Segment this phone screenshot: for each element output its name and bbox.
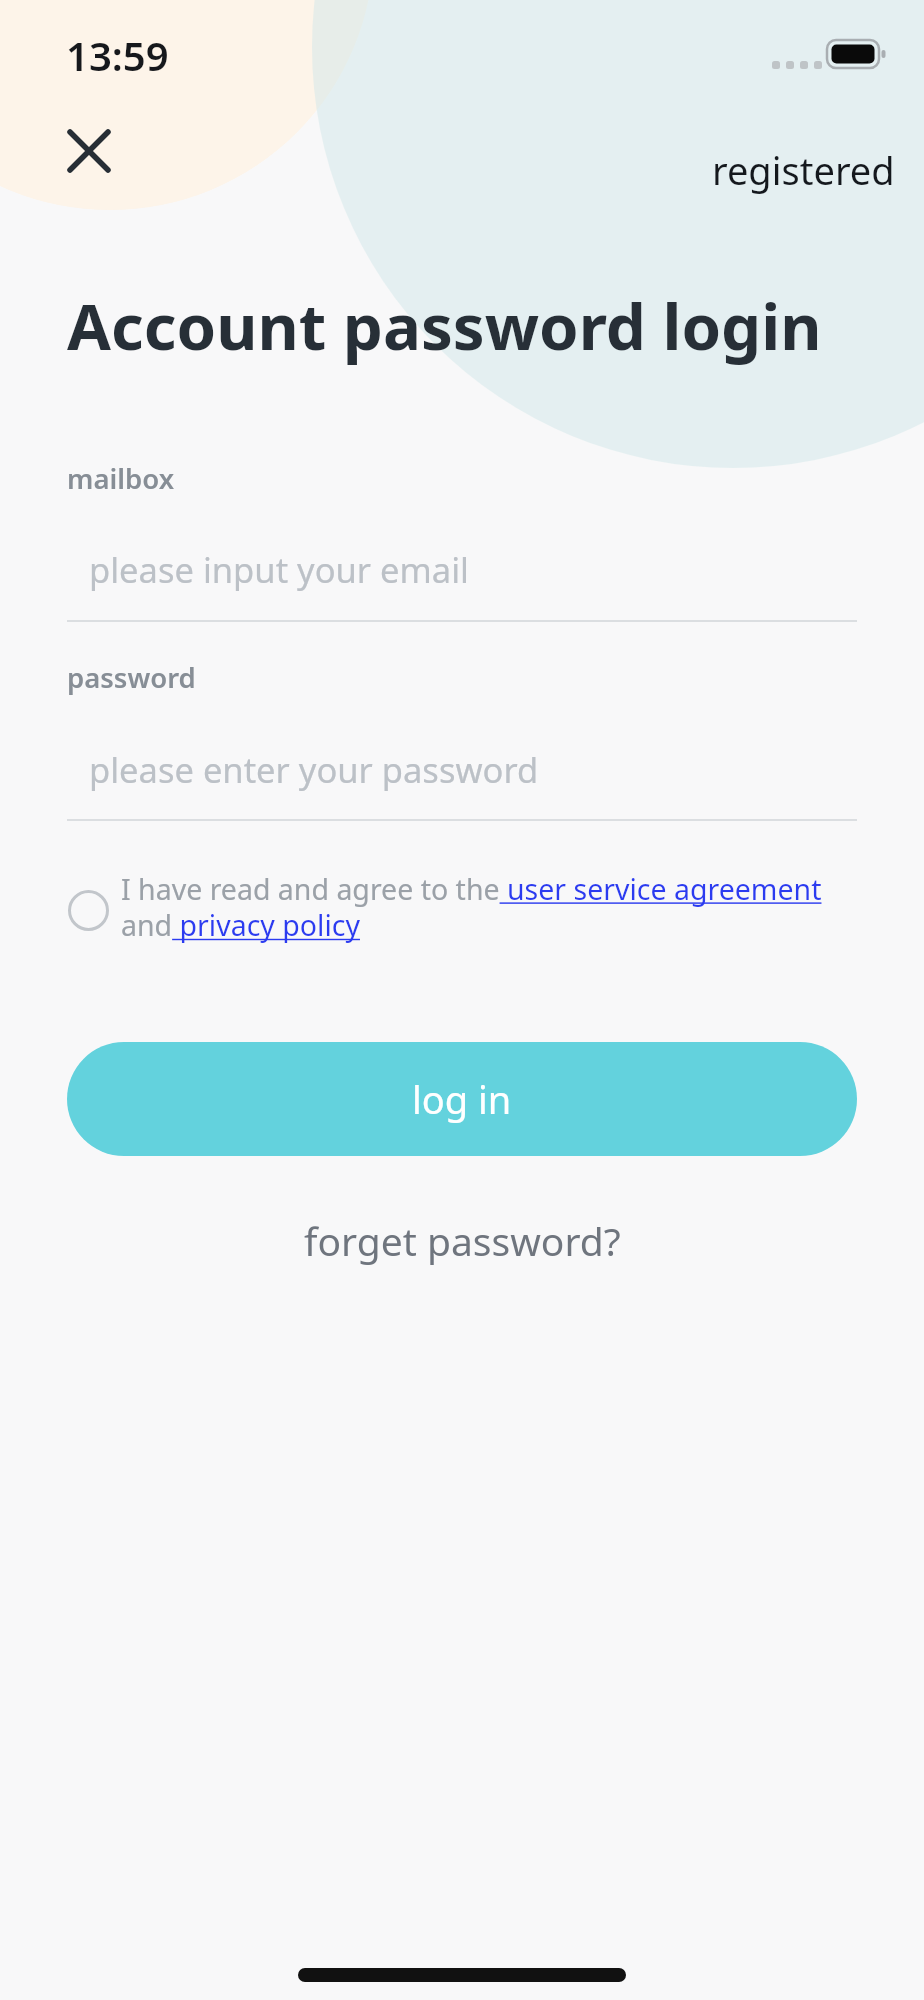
button[interactable]: log in (67, 1042, 857, 1156)
staticText: forget password? (304, 1214, 621, 1267)
staticText: please enter your password (89, 746, 539, 793)
button[interactable] (58, 120, 120, 182)
staticText: I have read and agree to the user servic… (121, 870, 822, 945)
staticText: mailbox (67, 460, 175, 497)
button[interactable]: I have read and agree to the user servic… (121, 870, 822, 945)
staticText: password (67, 659, 196, 696)
staticText: 13:59 (66, 28, 169, 82)
staticText: log in (412, 1073, 512, 1125)
staticText: Account password login (67, 282, 822, 368)
button[interactable]: registered (712, 144, 895, 196)
button[interactable]: forget password? (304, 1214, 621, 1267)
staticText: registered (712, 144, 895, 196)
button[interactable] (67, 889, 110, 932)
staticText: please input your email (89, 546, 469, 593)
